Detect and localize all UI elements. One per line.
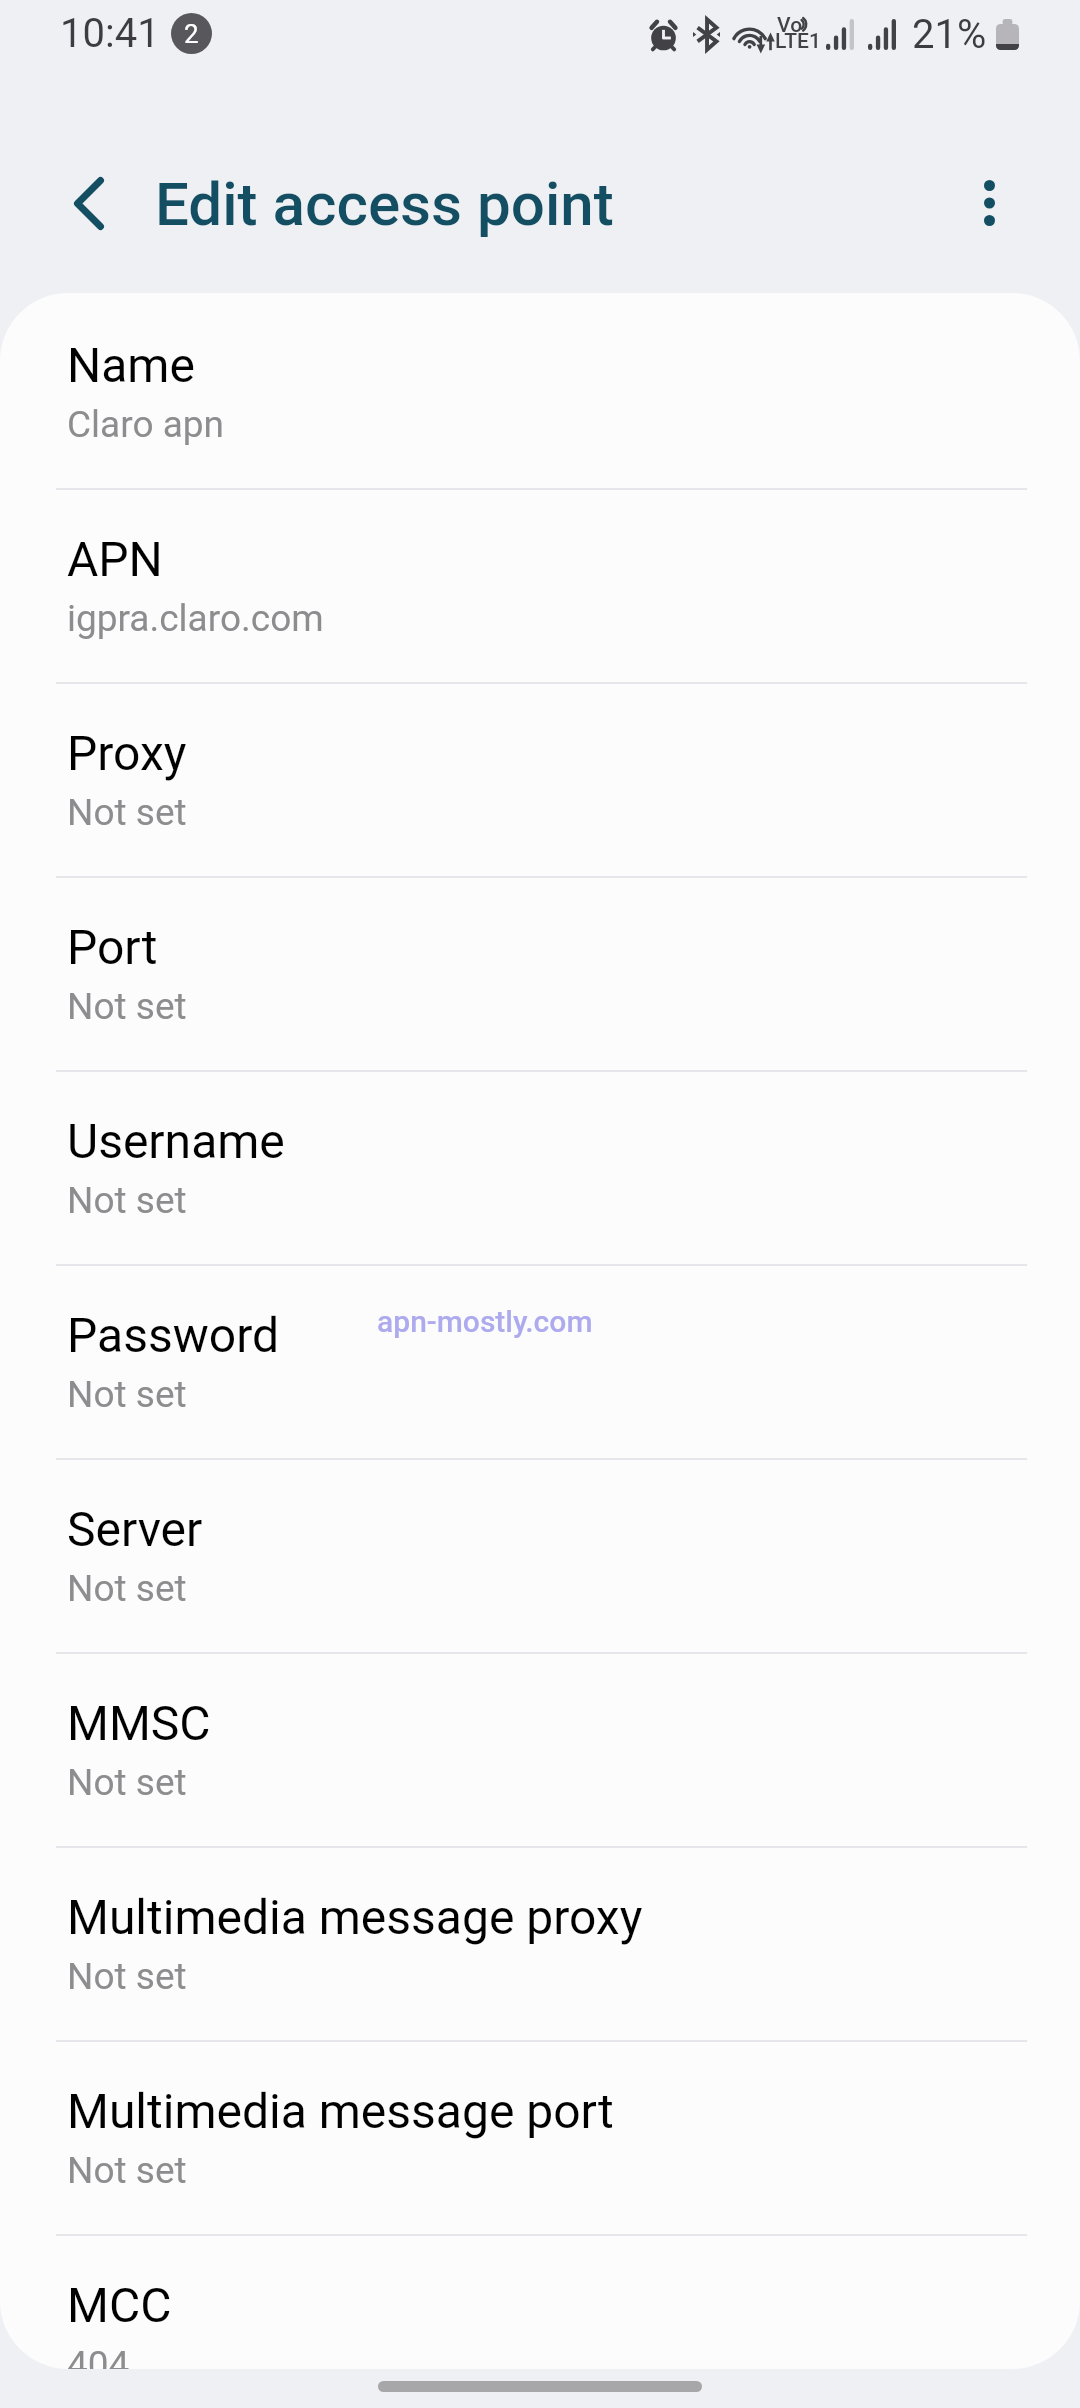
staticText: igpra.claro.com	[67, 597, 324, 640]
button[interactable]: Name	[0, 296, 1080, 488]
staticText: Vo	[777, 13, 822, 38]
staticText: 404	[67, 2343, 130, 2369]
staticText: APN	[67, 531, 163, 587]
button[interactable]: Port	[0, 878, 1080, 1070]
staticText: Not set	[67, 1567, 187, 1610]
button[interactable]: APN	[0, 490, 1080, 682]
button[interactable]: Proxy	[0, 684, 1080, 876]
button[interactable]: Multimedia message proxy	[0, 1848, 1080, 2040]
staticText: 10:41	[60, 10, 160, 57]
staticText: Not set	[67, 791, 187, 834]
staticText: Multimedia message port	[67, 2083, 614, 2139]
staticText: Password	[67, 1307, 280, 1363]
staticText: apn-mostly.com	[377, 1304, 593, 1339]
staticText: Not set	[67, 1761, 187, 1804]
button[interactable]: More options	[950, 164, 1028, 242]
button[interactable]: MCC	[0, 2236, 1080, 2369]
button[interactable]: Server	[0, 1460, 1080, 1652]
staticText: Port	[67, 919, 158, 975]
staticText: Server	[67, 1501, 203, 1557]
staticText: MMSC	[67, 1695, 211, 1751]
staticText: Claro apn	[67, 403, 224, 446]
button[interactable]: Multimedia message port	[0, 2042, 1080, 2234]
button[interactable]: Navigate up	[50, 164, 128, 242]
staticText: Edit access point	[155, 169, 614, 239]
staticText: Not set	[67, 1955, 187, 1998]
staticText: Proxy	[67, 725, 187, 781]
staticText: 2	[184, 19, 199, 49]
staticText: LTE1	[775, 29, 820, 54]
staticText: Not set	[67, 1179, 187, 1222]
staticText: Multimedia message proxy	[67, 1889, 643, 1945]
staticText: MCC	[67, 2277, 172, 2333]
staticText: Username	[67, 1113, 285, 1169]
staticText: Not set	[67, 2149, 187, 2192]
staticText: 21%	[912, 11, 987, 58]
staticText: Not set	[67, 985, 187, 1028]
staticText: Not set	[67, 1373, 187, 1416]
button[interactable]: Password	[0, 1266, 1080, 1458]
button[interactable]: MMSC	[0, 1654, 1080, 1846]
button[interactable]: Username	[0, 1072, 1080, 1264]
staticText: Name	[67, 337, 195, 393]
